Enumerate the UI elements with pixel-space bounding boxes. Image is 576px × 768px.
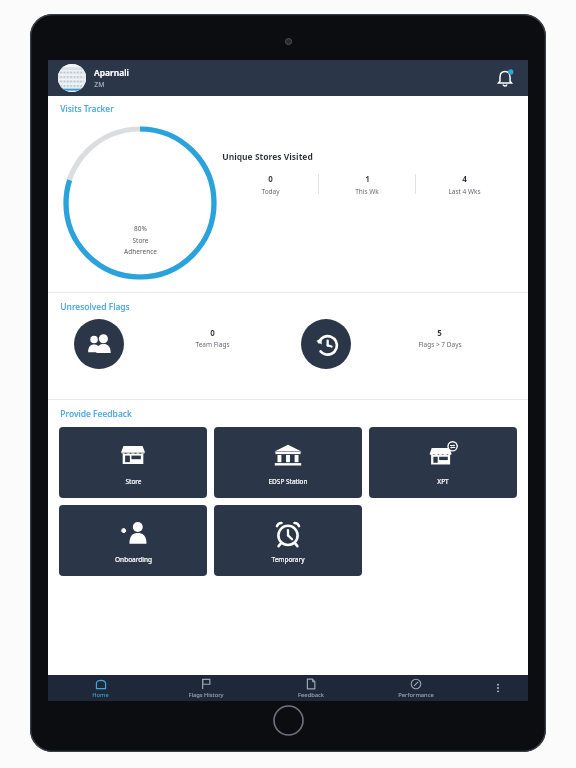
staticText: Feedback [298,691,324,699]
button[interactable]: Temporary [214,505,362,576]
button[interactable]: Home [48,675,153,701]
staticText: Unresolved Flags [60,301,130,313]
staticText: Flags History [188,691,224,699]
staticText: Store [132,236,149,245]
button[interactable]: EDSP Station [214,427,362,498]
button[interactable]: Notifications [492,65,518,91]
staticText: Today [261,187,280,196]
staticText: Home [92,691,109,699]
button[interactable]: Flags History [153,675,258,701]
staticText: Adherence [124,247,157,256]
staticText: Unique Stores Visited [222,151,313,163]
staticText: 5 [437,327,442,338]
button[interactable]: 0 [222,173,318,196]
staticText: Store [125,477,142,486]
staticText: Temporary [271,555,305,564]
button[interactable]: Onboarding [59,505,207,576]
staticText: Team Flags [195,340,230,349]
button[interactable]: Feedback [258,675,363,701]
button[interactable]: More options [468,675,528,701]
staticText: 0 [210,327,215,338]
button[interactable]: Profile [58,64,86,92]
staticText: 1 [365,173,370,184]
button[interactable]: Team Flags [74,319,124,369]
staticText: EDSP Station [268,477,308,486]
button[interactable]: 4 [416,173,512,196]
button[interactable]: XPT [369,427,517,498]
staticText: Performance [398,691,434,699]
staticText: 4 [462,173,467,184]
button[interactable]: Store [59,427,207,498]
staticText: Aparnali [94,67,129,79]
staticText: Last 4 Wks [448,187,481,196]
staticText: This Wk [355,187,379,196]
staticText: XPT [437,477,449,486]
staticText: Provide Feedback [60,408,132,420]
staticText: Visits Tracker [60,103,114,115]
staticText: 80% [134,224,147,233]
staticText: 0 [268,173,273,184]
button[interactable]: Flags older than 7 days [301,319,351,369]
button[interactable]: Performance [363,675,468,701]
button[interactable]: 1 [319,173,415,196]
staticText: ZM [94,80,105,90]
staticText: Onboarding [115,555,152,564]
staticText: Flags > 7 Days [418,340,462,349]
